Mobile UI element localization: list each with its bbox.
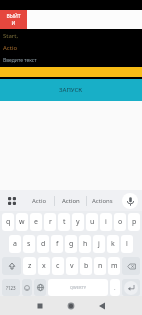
staticText: Start, [3, 32, 19, 40]
button[interactable]: Введите текст [3, 57, 37, 64]
button[interactable] [118, 190, 142, 211]
button[interactable]: p [128, 213, 140, 231]
button[interactable]: y [72, 213, 84, 231]
staticText: QWERTY [70, 285, 87, 290]
button[interactable]: m [108, 257, 120, 275]
staticText: e [34, 217, 38, 227]
staticText: g [69, 239, 74, 249]
button[interactable]: Actions [87, 190, 118, 211]
staticText: a [13, 239, 17, 249]
staticText: k [111, 239, 115, 249]
button[interactable]: o [114, 213, 126, 231]
staticText: u [90, 217, 95, 227]
button[interactable] [55, 296, 86, 315]
staticText: h [83, 239, 88, 249]
button[interactable]: d [37, 235, 49, 253]
staticText: v [70, 261, 74, 271]
button[interactable]: x [38, 257, 50, 275]
staticText: w [19, 217, 25, 227]
button[interactable] [86, 296, 117, 315]
staticText: c [56, 261, 60, 271]
button[interactable] [24, 296, 55, 315]
staticText: x [42, 261, 46, 271]
staticText: n [98, 261, 103, 271]
staticText: r [49, 217, 52, 227]
button[interactable]: t [58, 213, 70, 231]
staticText: . [114, 284, 116, 292]
button[interactable]: f [51, 235, 63, 253]
button[interactable] [122, 257, 140, 275]
staticText: Actio [3, 44, 18, 52]
button[interactable]: r [44, 213, 56, 231]
button[interactable]: Action [55, 190, 86, 211]
button[interactable]: c [52, 257, 64, 275]
button[interactable]: ЗАПУСК [0, 79, 142, 101]
button[interactable]: i [100, 213, 112, 231]
staticText: ВЫЙТ И [6, 13, 21, 26]
staticText: i [105, 217, 107, 227]
staticText: y [76, 217, 80, 227]
button[interactable]: ВЫЙТ И [0, 10, 27, 29]
staticText: Actions [92, 197, 113, 205]
button[interactable]: QWERTY [48, 279, 108, 296]
staticText: z [28, 261, 32, 271]
staticText: p [132, 217, 137, 227]
button[interactable]: j [93, 235, 105, 253]
button[interactable] [22, 279, 32, 296]
button[interactable]: b [80, 257, 92, 275]
staticText: f [56, 239, 59, 249]
button[interactable]: Actio [24, 190, 54, 211]
staticText: l [126, 239, 128, 249]
button[interactable]: . [110, 279, 120, 296]
staticText: b [84, 261, 89, 271]
staticText: t [63, 217, 66, 227]
button[interactable]: k [107, 235, 119, 253]
button[interactable]: w [16, 213, 28, 231]
button[interactable]: h [79, 235, 91, 253]
staticText: j [98, 239, 100, 249]
button[interactable]: v [66, 257, 78, 275]
button[interactable] [34, 279, 46, 296]
staticText: s [27, 239, 31, 249]
button[interactable]: z [23, 257, 36, 275]
staticText: q [6, 217, 11, 227]
button[interactable]: a [9, 235, 21, 253]
button[interactable] [122, 279, 140, 296]
button[interactable]: l [121, 235, 133, 253]
button[interactable]: q [2, 213, 14, 231]
button[interactable]: g [65, 235, 77, 253]
staticText: o [118, 217, 123, 227]
staticText: ?123 [6, 285, 16, 291]
button[interactable]: ?123 [2, 279, 20, 296]
staticText: d [41, 239, 46, 249]
button[interactable]: n [94, 257, 106, 275]
button[interactable] [0, 190, 24, 211]
button[interactable]: u [86, 213, 98, 231]
staticText: Actio [32, 197, 47, 205]
button[interactable]: e [30, 213, 42, 231]
staticText: m [111, 261, 118, 271]
staticText: Action [62, 197, 80, 205]
button[interactable] [2, 257, 21, 275]
staticText: ЗАПУСК [59, 86, 83, 94]
button[interactable]: s [23, 235, 35, 253]
